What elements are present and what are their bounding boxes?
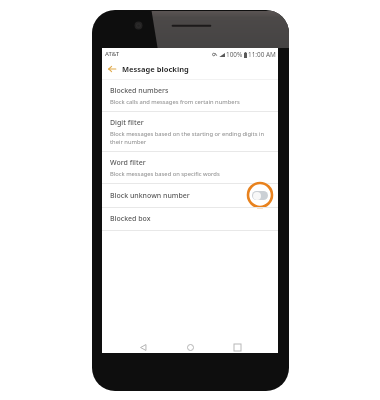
staticText: Blocked box <box>110 214 151 224</box>
button[interactable]: Recents <box>231 341 243 353</box>
button[interactable]: Blocked numbers <box>102 80 278 112</box>
button[interactable]: Block unknown number <box>102 184 278 208</box>
button[interactable]: Back <box>137 341 149 353</box>
button[interactable]: Back <box>105 62 119 76</box>
staticText: Message blocking <box>122 64 189 74</box>
staticText: Block calls and messages from certain nu… <box>110 98 240 106</box>
staticText: Digit filter <box>110 118 144 128</box>
button[interactable]: Blocked box <box>102 208 278 231</box>
staticText: Block messages based on specific words <box>110 170 220 178</box>
staticText: Block unknown number <box>110 191 190 201</box>
staticText: Word filter <box>110 158 146 168</box>
button[interactable]: Word filter <box>102 152 278 184</box>
staticText: Block messages based on the starting or … <box>110 130 270 146</box>
staticText: Blocked numbers <box>110 86 169 96</box>
staticText: 100% <box>226 50 243 59</box>
button[interactable]: Home <box>184 341 196 353</box>
button[interactable]: Digit filter <box>102 112 278 152</box>
staticText: 11:00 AM <box>248 50 276 59</box>
staticText: AT&T <box>105 50 120 58</box>
